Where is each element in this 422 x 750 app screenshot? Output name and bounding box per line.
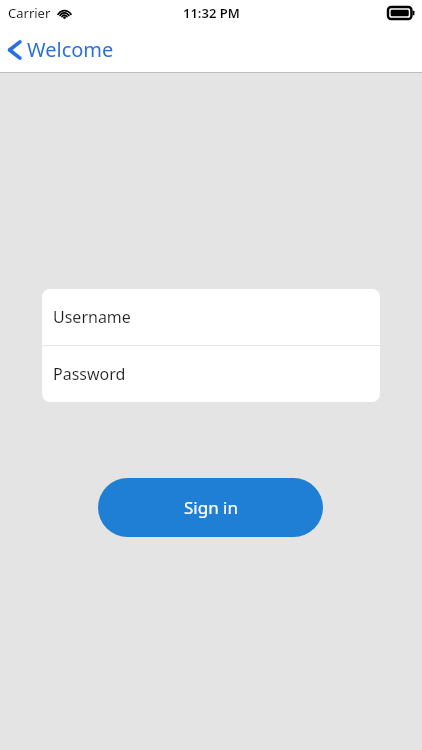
button[interactable]: Back	[8, 36, 122, 63]
staticText: 11:32 PM	[183, 4, 240, 22]
staticText: Password	[53, 363, 126, 385]
staticText: Username	[53, 306, 131, 328]
staticText: Carrier	[8, 4, 51, 22]
button[interactable]: Username	[42, 289, 380, 345]
button[interactable]: Password	[42, 346, 380, 402]
staticText: Sign in	[184, 496, 238, 519]
button[interactable]: Sign in	[98, 478, 323, 537]
other: Back	[8, 39, 21, 61]
staticText: Welcome	[27, 36, 114, 63]
